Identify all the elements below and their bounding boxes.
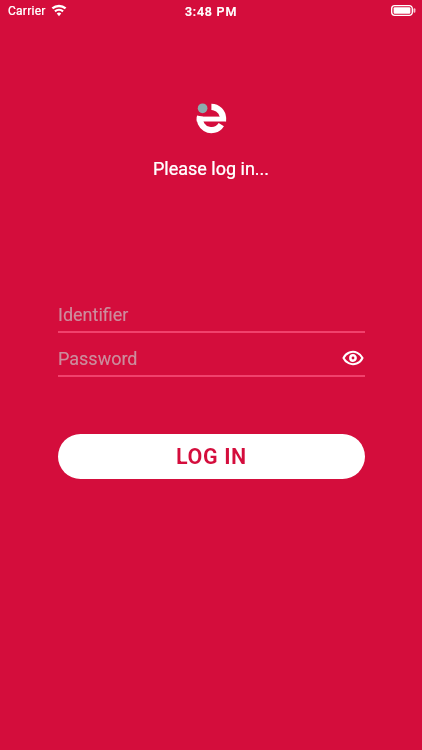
button[interactable]: LOG IN [58,434,365,479]
staticText: 3:48 PM [0,4,422,19]
staticText: Please log in... [0,158,422,179]
button[interactable]: Password [58,348,365,377]
button[interactable]: Show password [334,343,372,373]
staticText: Carrier [8,4,46,18]
button[interactable]: Identifier [58,304,365,333]
staticText: LOG IN [176,444,247,469]
staticText: Identifier [58,304,129,325]
staticText: Password [58,348,138,369]
